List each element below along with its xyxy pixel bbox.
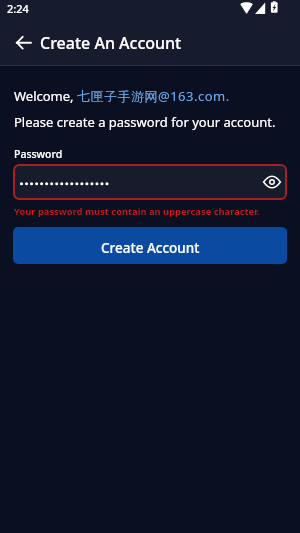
button[interactable]: Back [10, 32, 36, 58]
staticText: Welcome, 七匣子手游网@163.com. [14, 87, 230, 105]
staticText: Your password must contain an uppercase … [14, 205, 260, 218]
staticText: Create An Account [40, 32, 182, 54]
button[interactable]: Show password [259, 169, 285, 195]
staticText: 2:24 [7, 1, 29, 16]
staticText: Create Account [101, 239, 200, 257]
button[interactable]: Create Account [13, 227, 287, 264]
staticText: Password [14, 147, 63, 161]
staticText: Please create a password for your accoun… [14, 113, 276, 131]
button[interactable]: Show password [13, 164, 287, 200]
